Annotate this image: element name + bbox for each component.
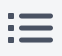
button[interactable]: Third item <box>0 36 53 43</box>
button[interactable]: First item <box>0 12 53 19</box>
button[interactable]: Second item <box>0 24 53 31</box>
